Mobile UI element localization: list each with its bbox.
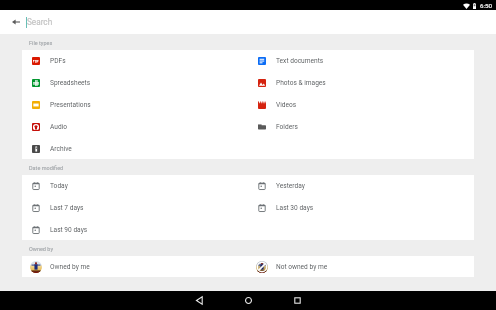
staticText: Folders (276, 123, 298, 131)
button[interactable]: Last 30 days (248, 197, 474, 219)
staticText: Last 7 days (50, 204, 84, 212)
button[interactable]: Last 90 days (22, 219, 248, 240)
button[interactable]: Archive (22, 138, 248, 159)
button[interactable]: Today (22, 175, 248, 197)
staticText: Not owned by me (276, 263, 328, 271)
button[interactable]: Back (7, 10, 25, 34)
staticText: Yesterday (276, 182, 305, 190)
button[interactable]: Presentations (22, 94, 248, 116)
button[interactable]: Last 7 days (22, 197, 248, 219)
staticText: File types (29, 40, 53, 46)
staticText: Audio (50, 123, 67, 131)
staticText: Presentations (50, 101, 91, 109)
button[interactable]: Yesterday (248, 175, 474, 197)
button[interactable]: Spreadsheets (22, 72, 248, 94)
button[interactable]: Owned by me (22, 256, 248, 277)
staticText: Text documents (276, 57, 324, 65)
staticText: Last 30 days (276, 204, 314, 212)
button[interactable]: Folders (248, 116, 474, 138)
button[interactable]: Audio (22, 116, 248, 138)
staticText: Today (50, 182, 68, 190)
staticText: Owned by (29, 246, 53, 252)
staticText: Search (27, 17, 53, 27)
button[interactable]: Home (230, 291, 266, 310)
button[interactable]: PDFs (22, 50, 248, 72)
button[interactable]: Videos (248, 94, 474, 116)
staticText: Photos & images (276, 79, 326, 87)
staticText: PDFs (50, 57, 66, 65)
staticText: Owned by me (50, 263, 90, 271)
button[interactable]: Text documents (248, 50, 474, 72)
button[interactable]: Photos & images (248, 72, 474, 94)
button[interactable]: Recent apps (279, 291, 315, 310)
staticText: Archive (50, 145, 72, 153)
staticText: Videos (276, 101, 297, 109)
button[interactable]: Back (181, 291, 217, 310)
button[interactable]: Not owned by me (248, 256, 474, 277)
staticText: Last 90 days (50, 226, 88, 234)
staticText: Date modified (29, 165, 64, 171)
staticText: 6:50 (480, 2, 492, 9)
staticText: Spreadsheets (50, 79, 91, 87)
